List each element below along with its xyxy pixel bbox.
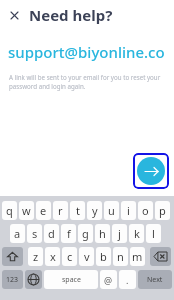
button[interactable]: l [146,224,161,243]
button[interactable]: i [121,201,136,220]
button[interactable]: s [27,224,42,243]
button[interactable]: x [45,247,60,266]
button[interactable]: Shift [2,247,23,266]
staticText: d [48,226,55,241]
button[interactable]: g [78,224,93,243]
button[interactable]: d [44,224,59,243]
button[interactable]: m [130,247,145,266]
staticText: k [134,226,140,241]
button[interactable]: z [28,247,43,266]
button[interactable]: j [112,224,127,243]
button[interactable]: 123 [2,270,23,289]
button[interactable]: f [61,224,76,243]
staticText: a [14,226,21,241]
staticText: g [82,226,89,241]
button[interactable]: n [113,247,128,266]
staticText: l [152,226,155,241]
staticText: Next [147,275,163,285]
button[interactable]: w [19,201,34,220]
button[interactable]: Close [5,6,23,24]
button[interactable]: p [155,201,170,220]
staticText: x [50,249,56,264]
staticText: n [117,249,124,264]
staticText: v [84,249,90,264]
staticText: z [33,249,39,264]
button[interactable]: e [36,201,51,220]
staticText: p [159,203,166,218]
button[interactable]: y [87,201,102,220]
staticText: o [142,203,149,218]
button[interactable]: o [138,201,153,220]
staticText: q [6,203,13,218]
staticText: h [99,226,106,241]
button[interactable]: k [129,224,144,243]
button[interactable]: Delete [150,247,171,266]
button[interactable]: u [104,201,119,220]
staticText: i [127,203,130,218]
staticText: A link will be sent to your email for yo… [9,73,162,91]
staticText: Need help? [29,5,113,25]
staticText: f [67,226,71,241]
staticText: support@biyonline.com [8,42,170,62]
button[interactable]: Submit [137,157,165,185]
staticText: . [126,274,129,286]
staticText: s [32,226,38,241]
button[interactable]: h [95,224,110,243]
staticText: r [58,203,63,218]
staticText: m [132,249,143,264]
staticText: c [67,249,73,264]
staticText: b [100,249,107,264]
button[interactable]: c [62,247,77,266]
button[interactable]: Globe [25,270,42,289]
staticText: @ [104,274,113,286]
staticText: space [62,275,81,285]
staticText: u [108,203,115,218]
staticText: y [92,203,98,218]
staticText: e [40,203,47,218]
staticText: t [76,203,80,218]
button[interactable]: r [53,201,68,220]
button[interactable]: Next [138,270,172,289]
button[interactable]: @ [100,270,117,289]
button[interactable]: a [10,224,25,243]
staticText: 123 [6,275,19,285]
staticText: j [118,226,121,241]
button[interactable]: t [70,201,85,220]
button[interactable]: . [119,270,136,289]
button[interactable]: b [96,247,111,266]
button[interactable]: space [44,270,98,289]
button[interactable]: q [2,201,17,220]
button[interactable]: v [79,247,94,266]
staticText: w [22,203,31,218]
